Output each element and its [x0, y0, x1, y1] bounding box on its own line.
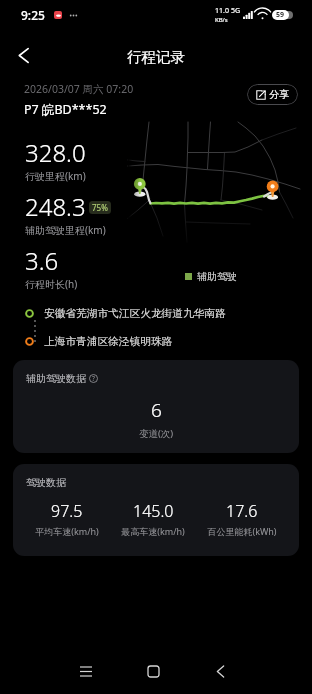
staticText: 行程时长(h)	[25, 277, 78, 291]
staticText: 变道(次)	[139, 427, 174, 440]
staticText: 5G	[231, 6, 241, 16]
staticText: 248.3	[25, 190, 86, 223]
staticText: 97.5	[51, 500, 83, 522]
button[interactable]: Home	[135, 653, 171, 689]
button[interactable]: 辅助驾驶数据	[13, 360, 299, 453]
staticText: 11.0	[215, 6, 229, 16]
staticText: 行驶里程(km)	[25, 169, 86, 183]
staticText: 辅助驾驶里程(km)	[25, 223, 106, 237]
staticText: 行程记录	[127, 48, 185, 66]
button[interactable]: Recents	[68, 653, 104, 689]
staticText: 辅助驾驶	[197, 270, 237, 283]
staticText: 分享	[269, 88, 289, 101]
staticText: 上海市青浦区徐泾镇明珠路	[44, 335, 173, 348]
staticText: 59	[276, 10, 285, 20]
staticText: 9:25	[21, 7, 45, 23]
staticText: P7 皖BD***52	[24, 101, 107, 118]
staticText: 6	[151, 397, 162, 423]
staticText: 最高车速(km/h)	[121, 525, 185, 537]
staticText: 17.6	[226, 500, 258, 522]
button[interactable]: Back	[9, 41, 37, 69]
staticText: KB/s	[215, 16, 228, 24]
staticText: 75%	[92, 202, 108, 213]
staticText: 3.6	[25, 244, 59, 277]
button[interactable]: 分享	[247, 84, 298, 105]
staticText: 安徽省芜湖市弋江区火龙街道九华南路	[44, 307, 226, 320]
button[interactable]: 驾驶数据	[13, 464, 299, 556]
staticText: ?	[92, 374, 95, 383]
staticText: 2026/03/07 周六 07:20	[24, 82, 134, 96]
staticText: 328.0	[25, 136, 86, 169]
staticText: 145.0	[133, 500, 174, 522]
staticText: 辅助驾驶数据	[26, 372, 86, 385]
staticText: 百公里能耗(kWh)	[207, 525, 277, 537]
staticText: 平均车速(km/h)	[35, 525, 99, 537]
button[interactable]: Back	[202, 653, 238, 689]
staticText: 驾驶数据	[26, 476, 66, 489]
